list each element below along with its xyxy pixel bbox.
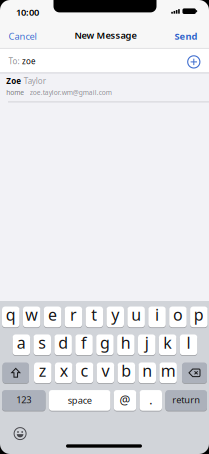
staticText: t <box>91 304 97 325</box>
button[interactable]: Shift <box>2 362 29 384</box>
staticText: n <box>142 360 152 381</box>
staticText: New Message <box>74 29 136 41</box>
button[interactable]: l <box>180 334 197 356</box>
staticText: s <box>38 332 46 353</box>
staticText: a <box>17 332 26 353</box>
staticText: @ <box>119 392 130 408</box>
staticText: o <box>173 304 183 325</box>
staticText: q <box>6 304 16 325</box>
button[interactable]: k <box>159 334 176 356</box>
button[interactable]: q <box>2 306 19 328</box>
staticText: . <box>149 392 152 408</box>
button[interactable]: . <box>140 389 162 411</box>
staticText: To: <box>8 56 19 66</box>
button[interactable]: c <box>76 362 93 384</box>
staticText: u <box>131 304 141 325</box>
button[interactable]: Cancel <box>9 30 37 42</box>
button[interactable]: u <box>127 306 145 328</box>
staticText: d <box>58 332 68 353</box>
button[interactable]: Emoji <box>12 426 28 442</box>
button[interactable]: f <box>75 334 93 356</box>
staticText: w <box>25 304 38 325</box>
button[interactable]: t <box>86 306 103 328</box>
button[interactable]: Send <box>174 30 197 42</box>
button[interactable]: n <box>138 362 156 384</box>
button[interactable]: Add contact <box>187 55 200 68</box>
staticText: z <box>39 360 47 381</box>
staticText: r <box>70 304 77 325</box>
button[interactable]: Delete <box>182 362 207 384</box>
staticText: y <box>111 304 119 325</box>
button[interactable]: r <box>65 306 82 328</box>
staticText: v <box>101 360 109 381</box>
staticText: p <box>194 304 204 325</box>
button[interactable]: o <box>169 306 187 328</box>
button[interactable]: 123 <box>2 389 45 411</box>
button[interactable]: d <box>54 334 72 356</box>
button[interactable]: y <box>106 306 124 328</box>
staticText: 123 <box>16 393 31 406</box>
staticText: zoe.taylor.wm@gmail.com <box>30 88 112 97</box>
staticText: g <box>100 332 110 353</box>
staticText: x <box>60 360 68 381</box>
staticText: home <box>6 88 24 97</box>
button[interactable]: m <box>159 362 177 384</box>
staticText: Send <box>174 30 197 42</box>
button[interactable]: z <box>34 362 51 384</box>
staticText: space <box>68 394 92 406</box>
staticText: j <box>145 332 149 353</box>
button[interactable]: space <box>49 389 110 411</box>
button[interactable]: a <box>13 334 30 356</box>
button[interactable]: Zoe <box>0 73 209 99</box>
button[interactable]: j <box>138 334 155 356</box>
staticText: l <box>186 332 190 353</box>
staticText: m <box>161 360 176 381</box>
staticText: 10:00 <box>16 6 39 18</box>
button[interactable]: s <box>33 334 51 356</box>
button[interactable]: @ <box>114 389 136 411</box>
button[interactable]: v <box>97 362 114 384</box>
button[interactable]: g <box>96 334 114 356</box>
button[interactable]: h <box>117 334 135 356</box>
staticText: b <box>121 360 131 381</box>
staticText: h <box>121 332 131 353</box>
button[interactable]: i <box>148 306 166 328</box>
staticText: zoe <box>22 56 36 66</box>
staticText: k <box>163 332 172 353</box>
button[interactable]: p <box>190 306 208 328</box>
button[interactable]: e <box>44 306 61 328</box>
button[interactable]: w <box>23 306 40 328</box>
staticText: Taylor <box>24 76 46 86</box>
button[interactable]: b <box>118 362 135 384</box>
button[interactable]: return <box>165 389 207 411</box>
staticText: i <box>155 304 159 325</box>
staticText: Zoe <box>6 76 21 86</box>
staticText: return <box>172 393 200 406</box>
button[interactable]: x <box>55 362 72 384</box>
staticText: f <box>81 332 87 353</box>
staticText: c <box>80 360 88 381</box>
staticText: e <box>48 304 57 325</box>
staticText: Cancel <box>9 30 37 42</box>
